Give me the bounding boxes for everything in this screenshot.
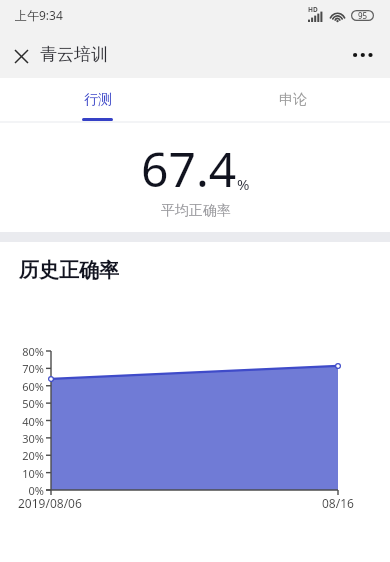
staticText: 30% <box>5 431 44 446</box>
staticText: 95 <box>358 10 368 21</box>
button[interactable]: More options <box>338 32 382 76</box>
staticText: 申论 <box>279 91 307 109</box>
staticText: 70% <box>5 361 44 376</box>
staticText: 上午9:34 <box>15 7 63 23</box>
staticText: 08/16 <box>322 495 354 511</box>
button[interactable]: Close <box>0 34 40 74</box>
staticText: 行测 <box>84 91 112 109</box>
staticText: 67.4 <box>141 136 237 201</box>
staticText: 平均正确率 <box>161 202 231 220</box>
staticText: 20% <box>5 448 44 463</box>
staticText: 青云培训 <box>40 44 108 65</box>
button[interactable]: 行测 <box>0 78 195 121</box>
button[interactable]: 申论 <box>195 78 390 121</box>
staticText: 0% <box>5 483 44 498</box>
staticText: 历史正确率 <box>19 258 119 283</box>
staticText: HD <box>308 5 318 14</box>
staticText: % <box>237 174 250 194</box>
staticText: 50% <box>5 396 44 411</box>
staticText: 80% <box>5 344 44 359</box>
staticText: 60% <box>5 379 44 394</box>
staticText: 10% <box>5 466 44 481</box>
staticText: 2019/08/06 <box>18 495 82 511</box>
staticText: 40% <box>5 414 44 429</box>
